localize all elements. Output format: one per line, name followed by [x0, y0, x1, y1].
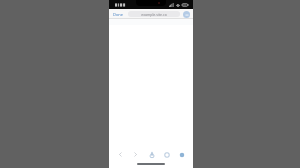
- staticText: Done: [113, 12, 124, 17]
- button[interactable]: More options: [183, 11, 190, 18]
- button[interactable]: Back: [114, 148, 127, 161]
- button[interactable]: Account: [175, 148, 188, 161]
- staticText: example.site.co: [141, 12, 167, 17]
- button[interactable]: Done: [112, 11, 125, 18]
- button[interactable]: example.site.co: [128, 11, 180, 17]
- button[interactable]: Forward: [129, 148, 142, 161]
- button[interactable]: Tabs: [160, 148, 173, 161]
- button[interactable]: Share: [145, 148, 158, 161]
